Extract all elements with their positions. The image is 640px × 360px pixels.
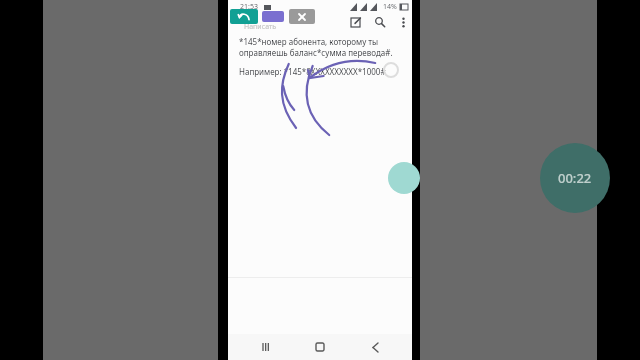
button[interactable]: Search xyxy=(371,13,389,31)
button[interactable]: More options xyxy=(395,14,411,30)
staticText: 00:22 xyxy=(558,169,592,187)
button[interactable]: Close drawing xyxy=(289,9,315,24)
staticText: 14% xyxy=(383,2,397,12)
button[interactable]: Home xyxy=(303,334,337,360)
button[interactable]: Compose xyxy=(346,13,364,31)
button[interactable]: Recents xyxy=(249,334,283,360)
button[interactable]: Pen colour purple xyxy=(262,11,284,22)
staticText: 21:53 xyxy=(240,2,258,12)
staticText: Написать xyxy=(244,22,277,32)
button[interactable]: Back xyxy=(358,334,392,360)
button[interactable]: Undo xyxy=(230,9,258,24)
staticText: Например: *145*8XXXXXXXXXX*1000# xyxy=(239,66,386,77)
staticText: *145*номер абонента, которому ты оправля… xyxy=(239,36,399,58)
button[interactable]: Action badge xyxy=(388,162,420,194)
